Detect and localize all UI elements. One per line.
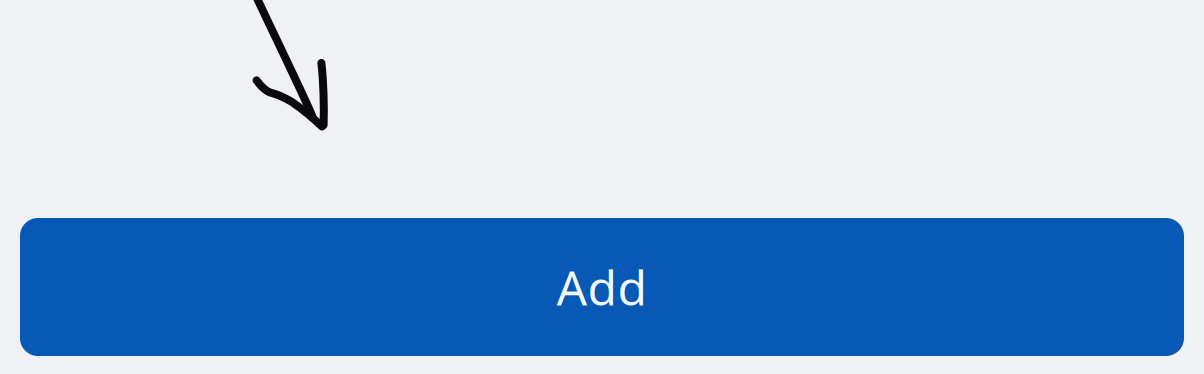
button[interactable]: Add [20, 218, 1184, 356]
staticText: Add [556, 255, 647, 319]
